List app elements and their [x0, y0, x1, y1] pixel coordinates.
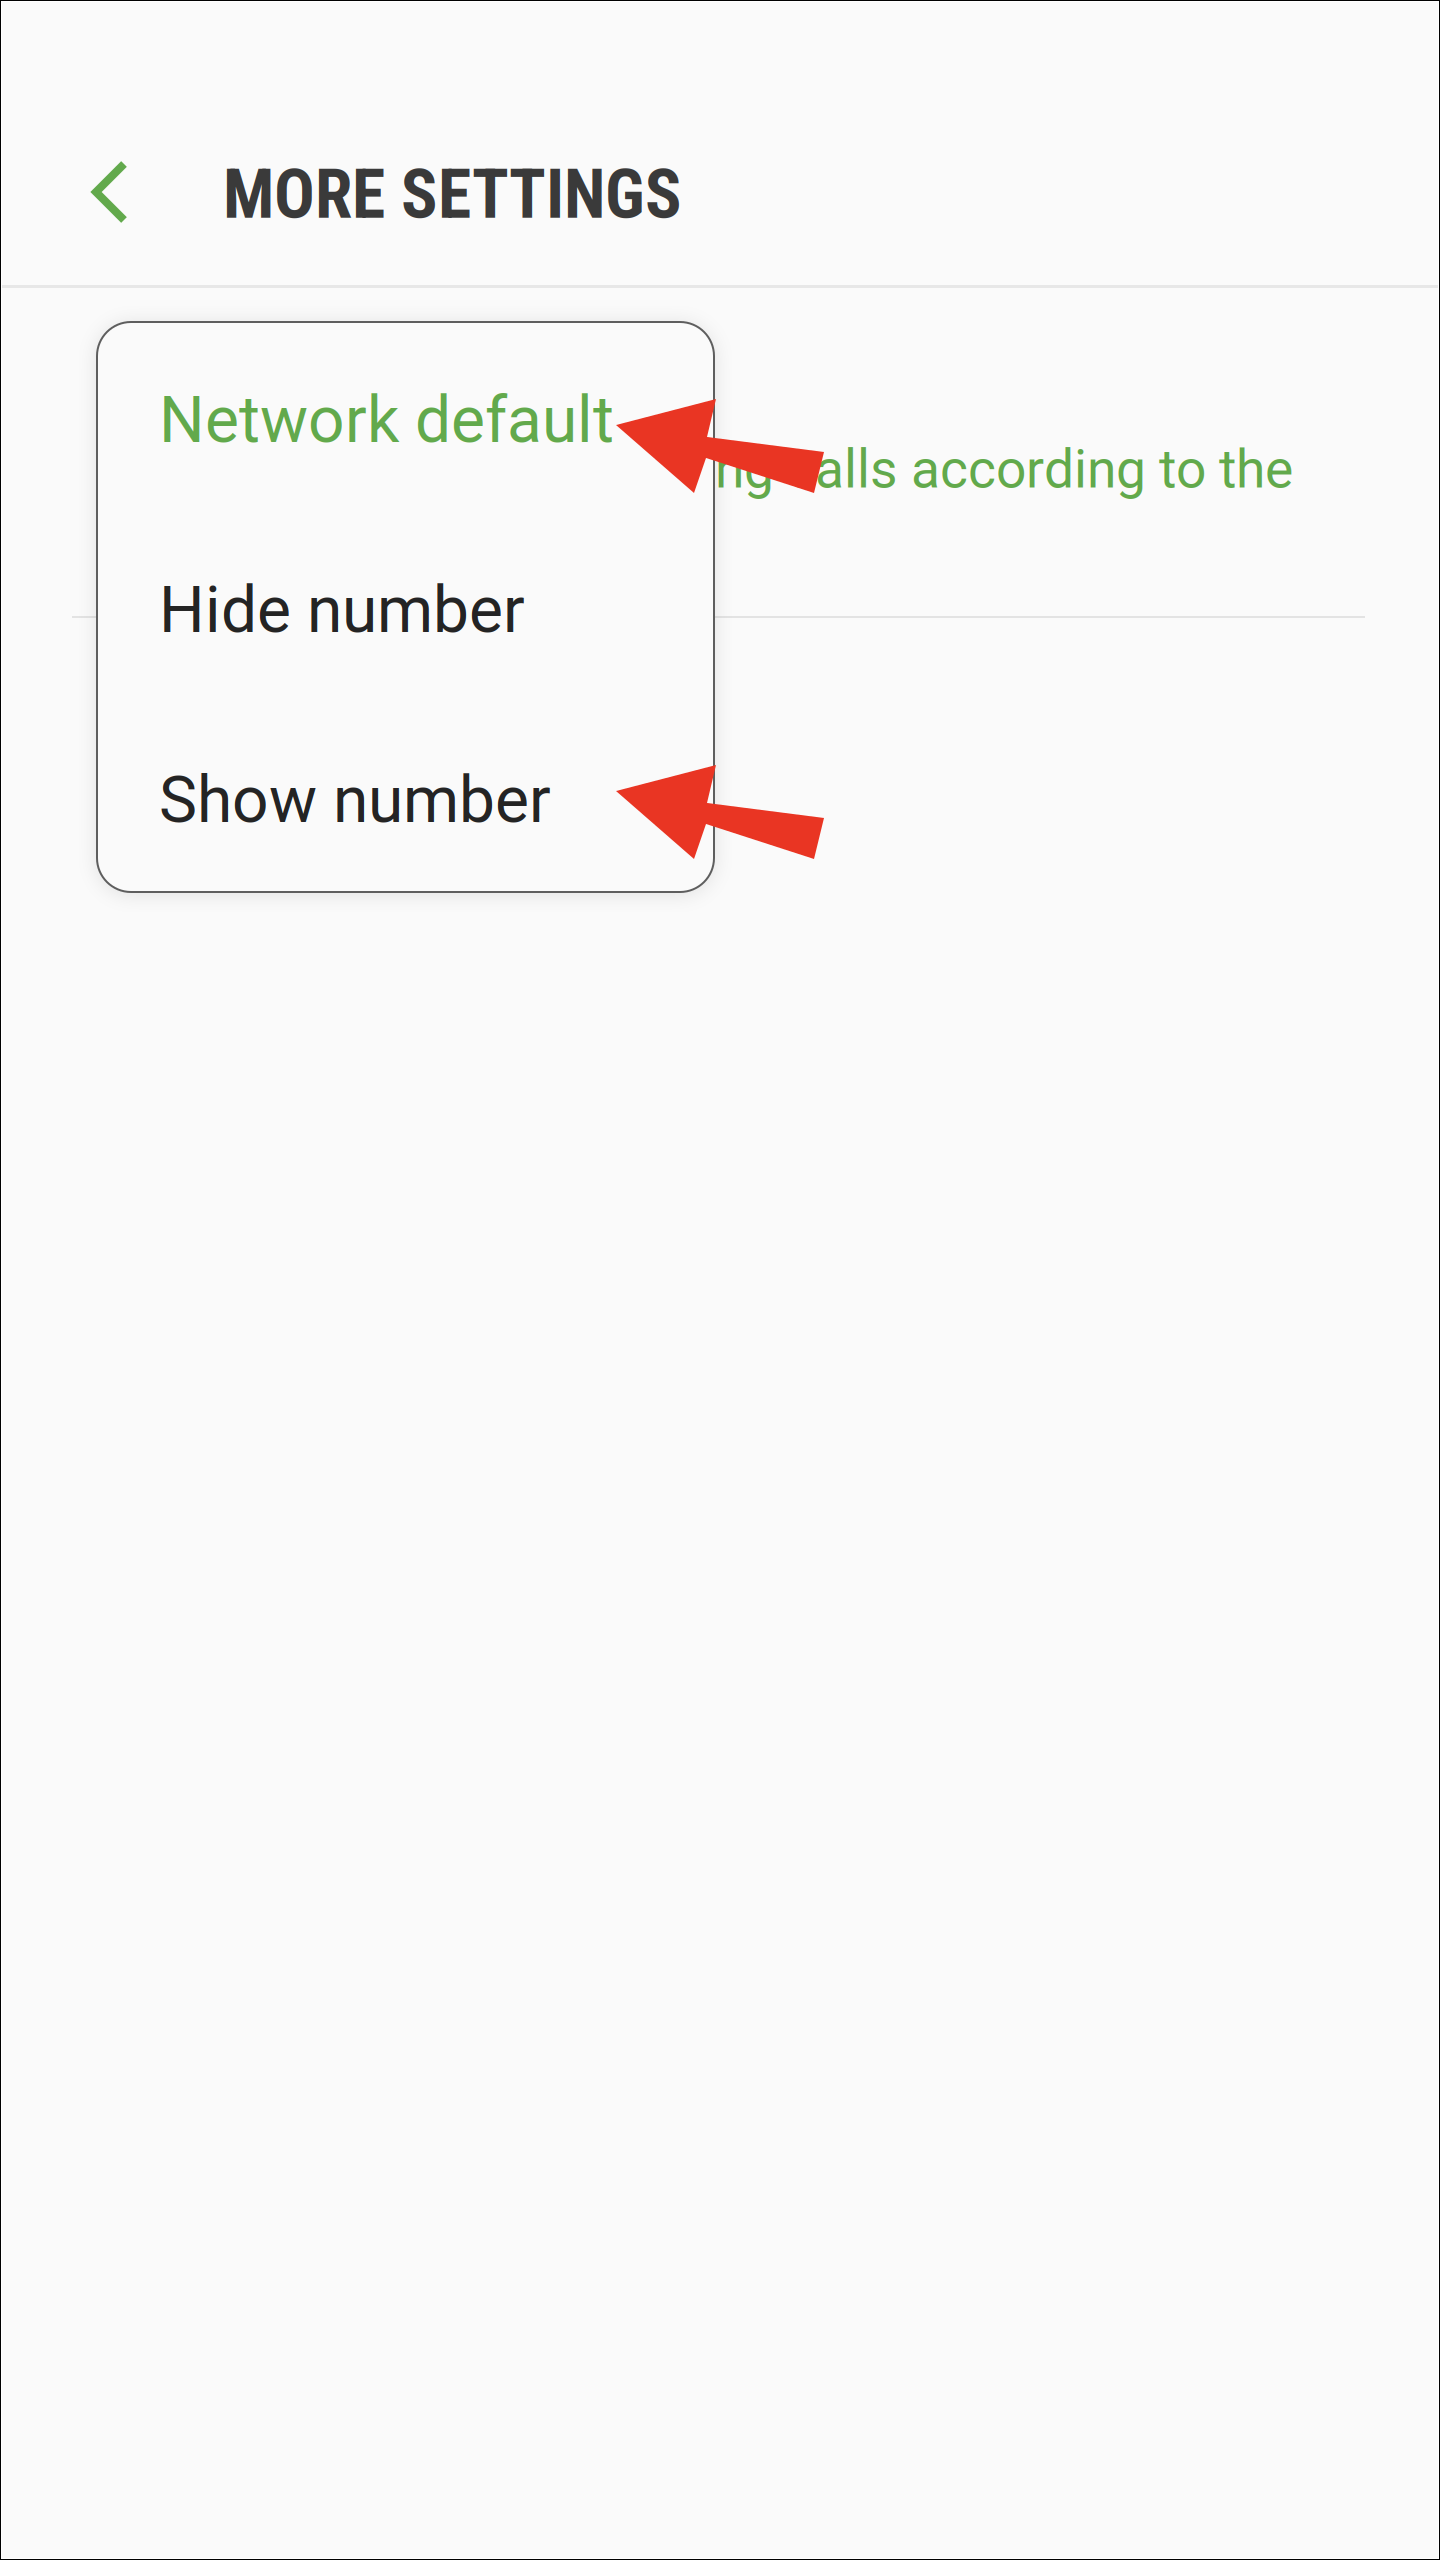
staticText: Caller ID is used on outgoing calls acco…	[100, 438, 1293, 500]
button[interactable]: Network default	[97, 322, 714, 512]
staticText: MORE SETTINGS	[223, 155, 682, 234]
button[interactable]: Back	[40, 92, 180, 292]
staticText: Hide number	[159, 572, 525, 647]
button[interactable]: Hide number	[97, 512, 714, 702]
button[interactable]: Show number	[97, 702, 714, 892]
staticText: Network default	[159, 382, 614, 457]
staticText: Show number	[159, 762, 551, 837]
